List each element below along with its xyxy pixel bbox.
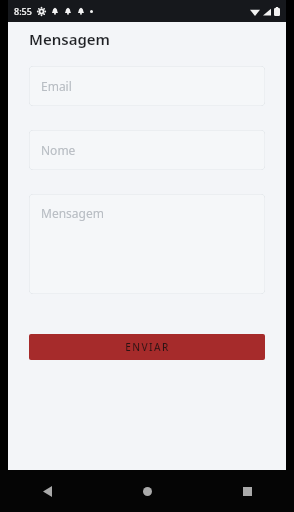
staticText: Mensagem (41, 205, 104, 221)
button[interactable]: Back (34, 478, 60, 504)
staticText: Mensagem (29, 29, 111, 49)
button[interactable]: Recents (234, 478, 260, 504)
staticText: ENVIAR (125, 340, 170, 354)
button[interactable]: More (219, 476, 277, 512)
button[interactable]: Nome (29, 130, 265, 170)
staticText: Email (41, 78, 72, 94)
staticText: Nome (41, 142, 76, 158)
button[interactable]: ENVIAR (29, 334, 265, 360)
button[interactable]: Mensagem (29, 194, 265, 294)
staticText: 8:55 (14, 5, 32, 17)
button[interactable]: Email (29, 66, 265, 106)
button[interactable]: Home (134, 478, 160, 504)
button[interactable]: Radio (17, 476, 75, 512)
